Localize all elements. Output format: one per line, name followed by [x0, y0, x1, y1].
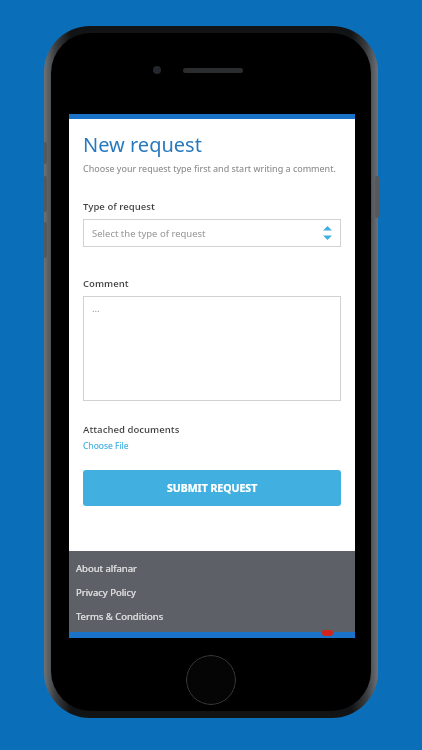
button[interactable]: Terms & Conditions	[69, 610, 355, 623]
button[interactable]: Select the type of request	[83, 219, 341, 247]
staticText: Type of request	[83, 200, 155, 213]
staticText: Privacy Policy	[76, 586, 136, 599]
staticText: Select the type of request	[92, 227, 206, 240]
staticText: Choose File	[83, 440, 129, 452]
staticText: Terms & Conditions	[76, 610, 164, 623]
staticText: Choose your request type first and start…	[83, 162, 336, 174]
staticText: New request	[83, 131, 202, 158]
staticText: Comment	[83, 277, 129, 290]
button[interactable]: ...	[83, 296, 341, 401]
button[interactable]: SUBMIT REQUEST	[83, 470, 341, 506]
staticText: SUBMIT REQUEST	[167, 481, 258, 495]
button[interactable]: Privacy Policy	[69, 586, 355, 599]
staticText: About alfanar	[76, 562, 137, 575]
button[interactable]: Choose File	[83, 440, 129, 452]
staticText: Attached documents	[83, 423, 180, 436]
staticText: ...	[92, 302, 100, 315]
button[interactable]: Home	[186, 655, 236, 705]
button[interactable]: About alfanar	[69, 562, 355, 575]
